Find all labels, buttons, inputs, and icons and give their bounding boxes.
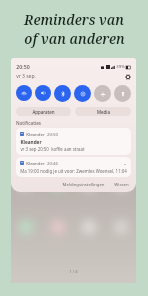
staticText: Apparaten <box>32 109 55 115</box>
button[interactable]: Sound <box>35 85 51 101</box>
button[interactable]: Flashlight <box>114 85 131 102</box>
staticText: ⌄ <box>123 161 127 166</box>
button[interactable]: Settings <box>124 73 131 80</box>
staticText: Kleander <box>26 131 45 137</box>
button[interactable]: Wi-Fi <box>16 85 32 101</box>
staticText: Kleander <box>26 160 45 166</box>
staticText: Wissen <box>114 181 129 187</box>
staticText: Kleander <box>20 139 42 145</box>
button[interactable]: Auto-rotate <box>74 85 91 102</box>
button[interactable]: Airplane mode <box>94 85 111 102</box>
staticText: Ma 19:00 nodig je uit voor: Zwemles Woen… <box>20 168 127 174</box>
staticText: 20:46 <box>47 160 58 166</box>
button[interactable]: Bluetooth <box>54 85 71 102</box>
staticText: Media <box>97 109 110 115</box>
staticText: 20:50 <box>16 63 30 70</box>
button[interactable]: Apparaten <box>16 107 71 116</box>
staticText: of van anderen <box>24 30 125 48</box>
button[interactable]: Kleander <box>16 157 131 177</box>
staticText: 39% <box>116 64 125 70</box>
staticText: Notificaties <box>16 120 41 126</box>
button[interactable]: Kleander <box>16 128 131 155</box>
button[interactable]: Meldingsinstellingen <box>60 180 107 188</box>
button[interactable]: Wissen <box>112 180 131 188</box>
button[interactable]: Media <box>75 107 131 116</box>
staticText: Reminders van jezelf <box>8 11 140 29</box>
staticText: vr 3 sep. <box>16 73 36 80</box>
staticText: 20:50 <box>47 131 58 137</box>
staticText: 1 / 4 <box>69 269 78 274</box>
staticText: Meldingsinstellingen <box>62 181 105 187</box>
staticText: vr 3 sep 20:50 koffie aan straat <box>20 146 85 152</box>
